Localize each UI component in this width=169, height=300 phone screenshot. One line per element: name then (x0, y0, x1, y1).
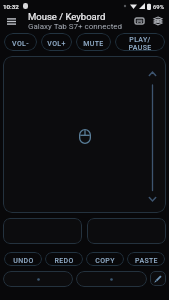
button[interactable]: Scroll right (76, 271, 147, 287)
staticText: COPY (95, 257, 115, 265)
button[interactable]: MUTE (76, 33, 111, 51)
button[interactable]: UNDO (4, 252, 42, 266)
button[interactable]: VOL- (4, 33, 37, 51)
button[interactable]: PLAY/ (115, 33, 165, 51)
button[interactable]: Scroll (139, 56, 166, 213)
button[interactable]: Keyboard (131, 11, 147, 31)
staticText: 10:32 (3, 3, 19, 10)
button[interactable]: Right click (87, 218, 166, 244)
button[interactable]: COPY (86, 252, 124, 266)
staticText: PASTE (135, 257, 158, 265)
staticText: MUTE (83, 40, 104, 48)
button[interactable]: Left click (3, 218, 82, 244)
button[interactable]: PASTE (127, 252, 165, 266)
button[interactable]: Menu (3, 11, 20, 31)
staticText: VOL- (12, 40, 29, 48)
button[interactable]: VOL+ (41, 33, 72, 51)
staticText: Galaxy Tab S7+ connected (28, 22, 122, 31)
button[interactable]: Edit text (150, 271, 166, 286)
staticText: PLAY/ (129, 36, 151, 44)
button[interactable]: Touchpad (3, 56, 166, 213)
staticText: REDO (54, 257, 74, 265)
button[interactable]: REDO (45, 252, 83, 266)
staticText: VOL+ (47, 40, 66, 48)
staticText: PAUSE (128, 44, 152, 51)
staticText: 69% (153, 3, 165, 10)
button[interactable]: Layers (150, 11, 166, 31)
button[interactable]: Scroll left (3, 271, 73, 287)
staticText: UNDO (13, 257, 34, 265)
staticText: Mouse / Keyboard (28, 11, 106, 22)
